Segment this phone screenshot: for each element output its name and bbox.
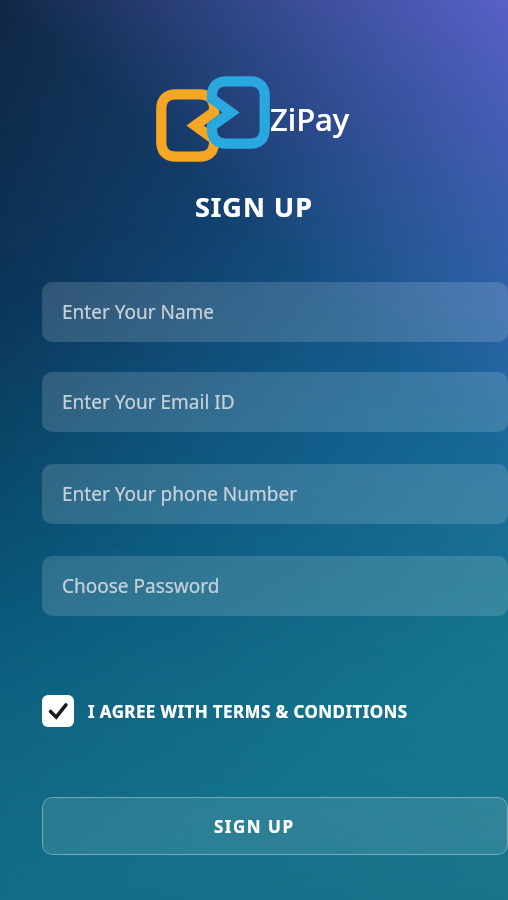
staticText: SIGN UP — [214, 815, 295, 838]
button[interactable]: Choose Password — [42, 556, 508, 616]
staticText: Enter Your Name — [62, 299, 215, 325]
staticText: Choose Password — [62, 573, 220, 599]
staticText: SIGN UP — [0, 188, 508, 225]
button[interactable]: Enter Your Email ID — [42, 372, 508, 432]
staticText: Enter Your Email ID — [62, 389, 235, 415]
button[interactable]: I AGREE WITH TERMS & CONDITIONS — [42, 695, 408, 727]
button[interactable]: Enter Your Name — [42, 282, 508, 342]
other: ZiPay logo — [158, 78, 268, 160]
staticText: I AGREE WITH TERMS & CONDITIONS — [88, 700, 408, 723]
staticText: ZiPay — [270, 98, 350, 140]
button[interactable]: Enter Your phone Number — [42, 464, 508, 524]
button[interactable]: SIGN UP — [42, 797, 508, 855]
staticText: Enter Your phone Number — [62, 481, 298, 507]
